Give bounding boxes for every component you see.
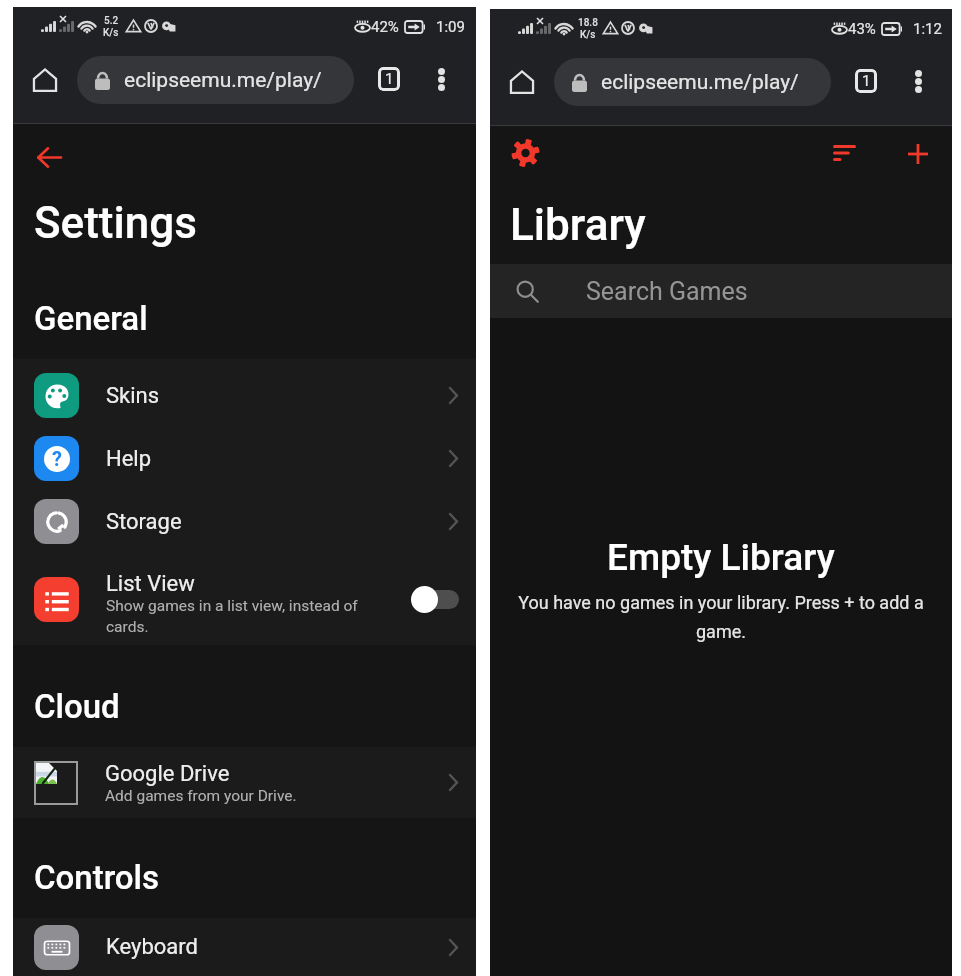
staticText: You have no games in your library. Press… [500,592,942,642]
button[interactable]: Back [26,134,72,180]
button[interactable] [411,585,459,613]
button[interactable]: eclipseemu.me/play/ [554,58,831,106]
button[interactable]: More options [418,56,464,102]
staticText: Google Drive [105,761,230,787]
button[interactable]: Sort [821,130,867,176]
button[interactable]: Storage [13,490,476,553]
button[interactable]: Add game [895,131,941,177]
staticText: ? [52,447,62,470]
staticText: Settings [34,197,197,249]
button[interactable]: Home [498,58,546,106]
staticText: Empty Library [607,536,835,579]
staticText: Keyboard [106,934,198,960]
button[interactable]: ? [13,427,476,490]
button[interactable]: Keyboard [13,918,476,976]
staticText: K/s [580,29,596,41]
button[interactable]: Google Drive [13,747,476,818]
staticText: List View [106,571,195,597]
staticText: Help [106,446,152,472]
staticText: 1 [385,70,394,88]
staticText: 5.2 [104,15,119,27]
staticText: Controls [34,858,159,897]
staticText: eclipseemu.me/play/ [601,70,799,95]
staticText: General [34,299,148,338]
staticText: 18.8 [578,17,598,29]
button[interactable]: Settings [502,130,548,176]
staticText: 1 [862,72,871,90]
staticText: Library [510,199,646,251]
button[interactable]: Tabs [366,56,412,102]
button[interactable]: Search Games [490,264,952,318]
button[interactable]: Skins [13,364,476,427]
button[interactable]: List View [13,553,476,645]
staticText: Cloud [34,687,120,726]
button[interactable]: eclipseemu.me/play/ [77,56,354,104]
button[interactable]: Tabs [843,58,889,104]
staticText: 1:09 [436,18,465,36]
staticText: 43% [848,20,876,38]
staticText: K/s [103,27,119,39]
staticText: 42% [371,18,399,36]
staticText: Storage [106,509,182,535]
button[interactable]: More options [895,58,941,104]
staticText: Show games in a list view, instead of ca… [106,597,358,636]
staticText: eclipseemu.me/play/ [124,68,322,93]
staticText: Search Games [586,277,748,306]
button[interactable]: Home [21,56,69,104]
staticText: Skins [106,383,160,409]
staticText: 1:12 [913,20,942,38]
staticText: Add games from your Drive. [105,787,297,805]
